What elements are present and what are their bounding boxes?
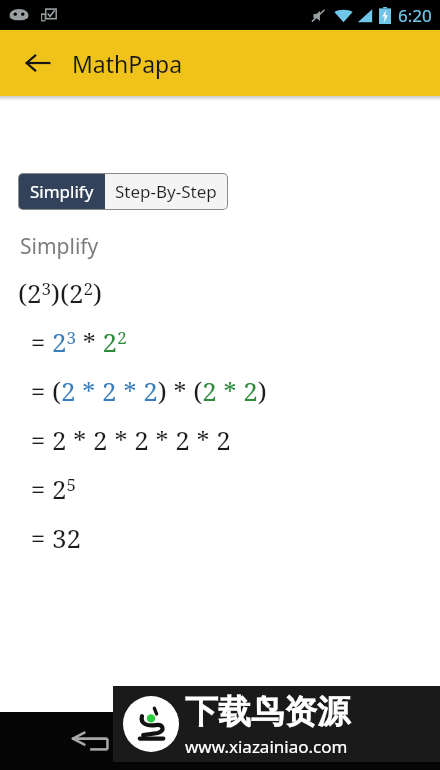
staticText: 6:20	[398, 4, 432, 27]
staticText: Simplify	[30, 180, 94, 203]
staticText: = (2 * 2 * 2) * (2 * 2)	[24, 373, 267, 408]
staticText: Step-By-Step	[115, 180, 217, 203]
staticText: = 23 * 22	[24, 324, 127, 359]
button[interactable]: Back	[70, 726, 118, 756]
staticText: MathPapa	[72, 48, 183, 79]
staticText: = 2 * 2 * 2 * 2 * 2	[24, 422, 231, 457]
button[interactable]: Navigate up	[18, 43, 58, 83]
staticText: (23)(22)	[18, 275, 103, 310]
button[interactable]: Step-By-Step	[105, 174, 227, 209]
staticText: Simplify	[20, 232, 99, 261]
staticText: 下载鸟资源	[185, 691, 350, 733]
staticText: = 25	[24, 471, 77, 506]
staticText: www.xiazainiao.com	[185, 735, 348, 758]
button[interactable]: Simplify	[19, 174, 105, 209]
staticText: = 32	[24, 520, 82, 555]
